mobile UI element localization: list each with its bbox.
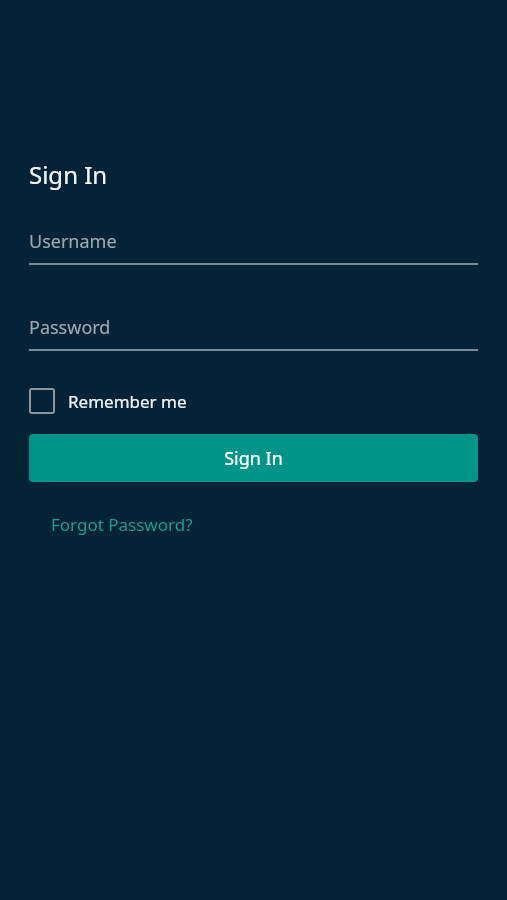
staticText: Forgot Password? bbox=[51, 513, 193, 536]
staticText: Password bbox=[29, 315, 111, 340]
staticText: Remember me bbox=[68, 390, 187, 413]
staticText: Sign In bbox=[29, 158, 108, 191]
button[interactable]: Sign In bbox=[29, 434, 478, 482]
button[interactable]: Forgot Password? bbox=[51, 509, 193, 540]
button[interactable]: Remember me bbox=[29, 388, 187, 414]
button[interactable]: Password bbox=[29, 315, 478, 351]
button[interactable]: Username bbox=[29, 229, 478, 265]
staticText: Username bbox=[29, 229, 117, 254]
staticText: Sign In bbox=[224, 446, 283, 471]
